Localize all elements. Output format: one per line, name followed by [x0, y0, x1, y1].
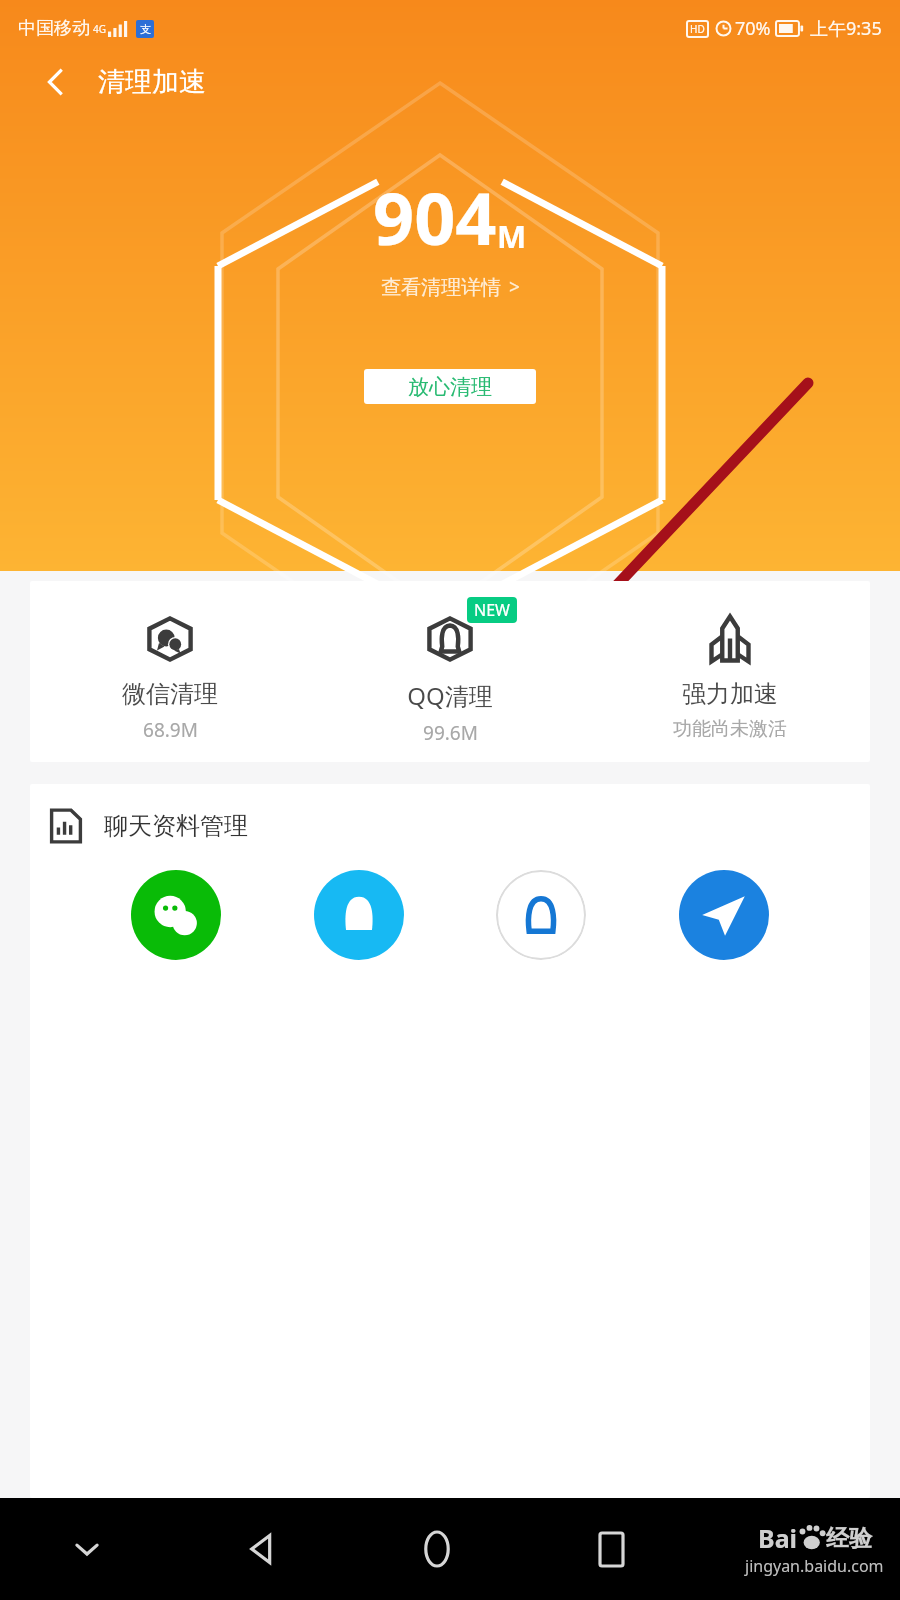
button[interactable]: Home	[349, 1498, 524, 1600]
staticText: 68.9M	[143, 717, 198, 743]
button[interactable]: 查看清理详情	[377, 270, 524, 304]
button[interactable]	[496, 870, 586, 960]
staticText: 4G	[93, 22, 106, 36]
staticText: 放心清理	[408, 374, 492, 400]
staticText: 查看清理详情	[381, 275, 501, 300]
staticText: 微信清理	[122, 679, 218, 709]
button[interactable]: QQ清理	[310, 597, 590, 746]
staticText: 经验	[826, 1524, 872, 1553]
button[interactable]	[131, 870, 221, 960]
staticText: 904	[373, 168, 497, 266]
staticText: NEW	[474, 599, 510, 621]
staticText: 中国移动	[18, 17, 90, 40]
button[interactable]: 微信清理	[30, 597, 310, 743]
button[interactable]	[314, 870, 404, 960]
button[interactable]: Recents	[524, 1498, 699, 1600]
staticText: 清理加速	[98, 65, 206, 99]
staticText: 功能尚未激活	[673, 717, 787, 741]
button[interactable]: Back	[32, 59, 78, 105]
staticText: 聊天资料管理	[104, 811, 248, 841]
button[interactable]: 放心清理	[364, 369, 536, 404]
button[interactable]	[679, 870, 769, 960]
staticText: Bai	[758, 1521, 798, 1555]
staticText: >	[509, 274, 520, 300]
staticText: 上午9:35	[810, 16, 882, 41]
staticText: 支	[140, 22, 151, 36]
staticText: jingyan.baidu.com	[745, 1555, 884, 1577]
staticText: 99.6M	[423, 720, 478, 746]
staticText: M	[497, 215, 527, 257]
staticText: 强力加速	[682, 679, 778, 709]
staticText: QQ清理	[407, 679, 493, 712]
button[interactable]: Back	[174, 1498, 349, 1600]
staticText: 70%	[735, 16, 771, 41]
button[interactable]: Hide keyboard	[0, 1498, 174, 1600]
staticText: HD	[690, 22, 705, 36]
button[interactable]: 聊天资料管理	[30, 784, 870, 856]
button[interactable]: 强力加速	[590, 597, 870, 741]
